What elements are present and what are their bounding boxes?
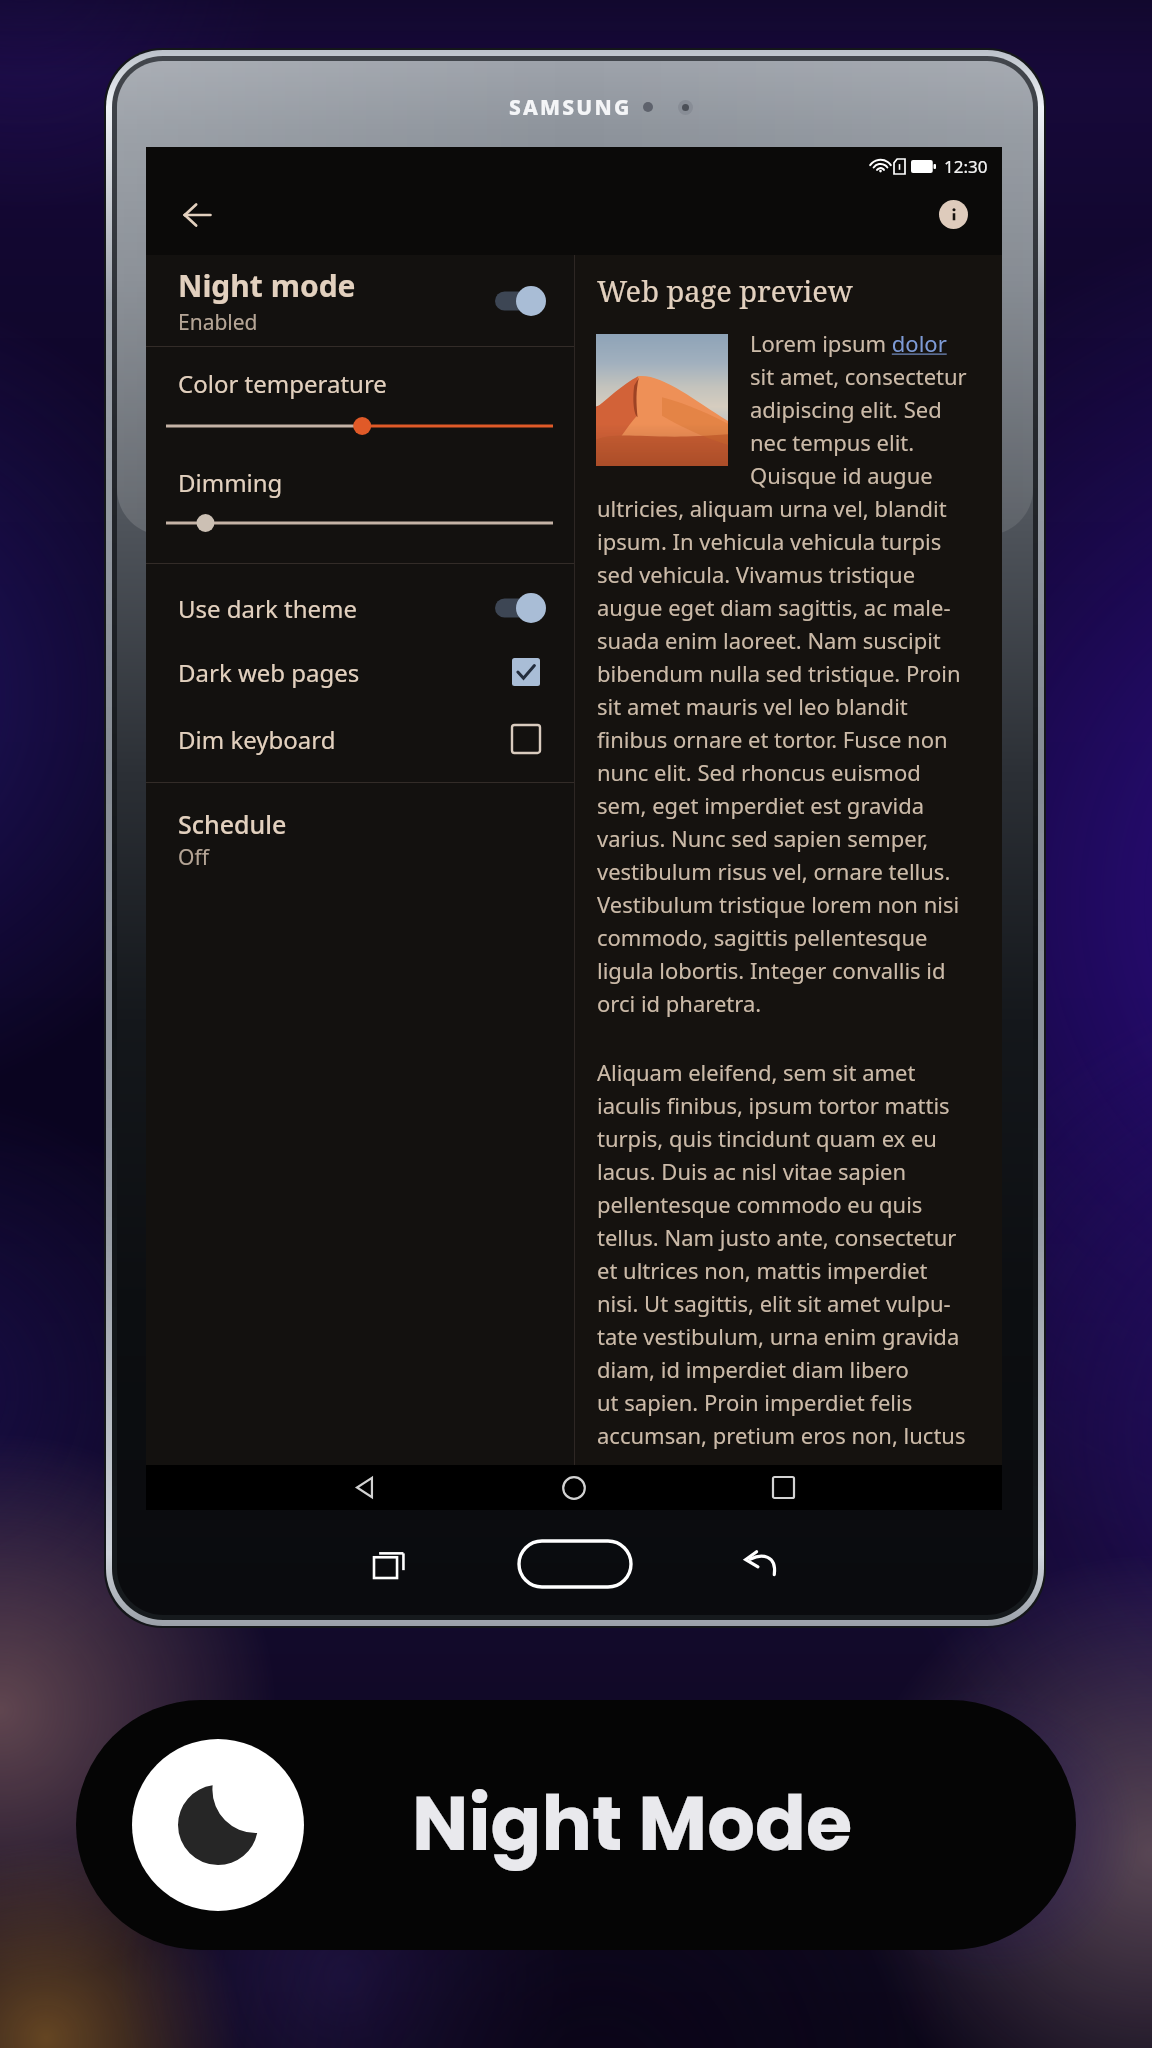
staticText: ultricies, aliquam urna vel, blandit ips…: [597, 493, 961, 1018]
staticText: Web page preview: [597, 271, 853, 310]
staticText: Dark web pages: [178, 656, 506, 689]
staticText: 12:30: [944, 155, 988, 178]
button[interactable]: Checkbox: [506, 655, 546, 689]
staticText: Dimming: [178, 466, 283, 499]
button[interactable]: Dim keyboard: [146, 715, 574, 763]
button[interactable]: Recents: [354, 1528, 426, 1600]
staticText: Color temperature: [178, 367, 387, 400]
button[interactable]: Checkbox: [506, 722, 546, 756]
staticText: Night Mode: [412, 1771, 853, 1876]
staticText: Dim keyboard: [178, 723, 506, 756]
button[interactable]: Info: [924, 185, 982, 243]
button[interactable]: Back: [166, 184, 228, 246]
staticText: Night mode: [178, 265, 356, 306]
button[interactable]: Toggle: [495, 286, 546, 316]
button[interactable]: Recents: [755, 1465, 811, 1510]
staticText: Schedule: [178, 807, 287, 841]
button[interactable]: Toggle: [495, 593, 546, 623]
button[interactable]: Dark web pages: [146, 648, 574, 696]
button[interactable]: Night mode: [146, 255, 574, 346]
button[interactable]: Use dark theme: [146, 584, 574, 632]
button[interactable]: Night Mode: [76, 1700, 1076, 1950]
button[interactable]: Back: [337, 1465, 393, 1510]
staticText: Off: [178, 843, 209, 872]
button[interactable]: Home: [500, 1531, 650, 1597]
staticText: Lorem ipsum dolor sit amet, consectetur …: [750, 328, 967, 490]
staticText: Aliquam eleifend, sem sit amet iaculis f…: [597, 1057, 966, 1450]
button[interactable]: Schedule: [146, 782, 574, 898]
button[interactable]: Home: [546, 1465, 602, 1510]
staticText: Use dark theme: [178, 592, 495, 625]
staticText: SAMSUNG: [509, 93, 632, 122]
button[interactable]: Back: [724, 1528, 796, 1600]
staticText: Enabled: [178, 308, 258, 337]
